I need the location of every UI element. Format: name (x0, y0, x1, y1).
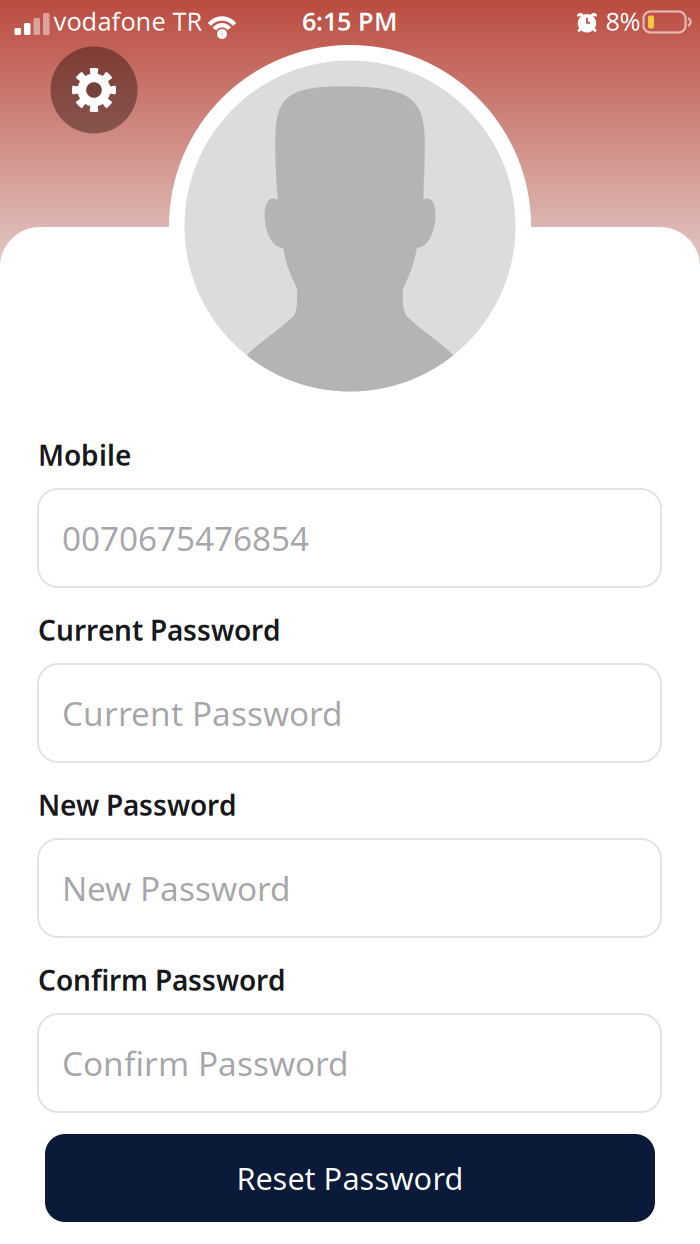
staticText: Confirm Password (62, 1041, 349, 1085)
button[interactable]: New Password (38, 839, 661, 937)
staticText: New Password (62, 866, 291, 910)
staticText: Current Password (38, 611, 281, 649)
staticText: Mobile (38, 436, 131, 474)
staticText: 8% (605, 4, 640, 38)
staticText: New Password (38, 786, 237, 824)
button[interactable]: Current Password (38, 664, 661, 762)
staticText: vodafone TR (53, 4, 202, 38)
button[interactable]: Reset Password (45, 1134, 655, 1222)
staticText: Confirm Password (38, 961, 286, 999)
button[interactable]: Settings (50, 46, 137, 133)
staticText: 0070675476854 (62, 516, 309, 560)
staticText: Reset Password (236, 1158, 463, 1198)
button[interactable]: 0070675476854 (38, 489, 661, 587)
button[interactable]: Confirm Password (38, 1014, 661, 1112)
staticText: Current Password (62, 691, 343, 735)
staticText: 6:15 PM (302, 4, 398, 38)
